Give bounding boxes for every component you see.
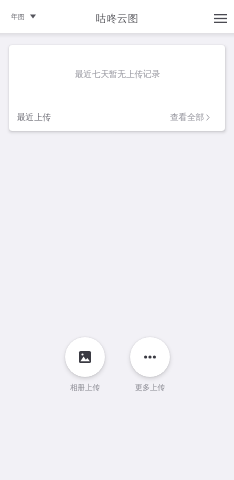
staticText: 查看全部 — [170, 112, 204, 123]
button[interactable]: 相册上传 — [65, 337, 105, 392]
button[interactable]: 年图 — [7, 7, 40, 26]
staticText: 更多上传 — [135, 383, 165, 392]
staticText: 最近七天暂无上传记录 — [75, 69, 160, 80]
staticText: 年图 — [11, 12, 25, 21]
staticText: 咕咚云图 — [96, 12, 138, 25]
staticText: 最近上传 — [17, 112, 51, 123]
button[interactable]: 更多上传 — [130, 337, 170, 392]
button[interactable]: 查看全部 — [170, 112, 225, 123]
button[interactable]: Menu — [208, 6, 232, 30]
staticText: 相册上传 — [70, 383, 100, 392]
